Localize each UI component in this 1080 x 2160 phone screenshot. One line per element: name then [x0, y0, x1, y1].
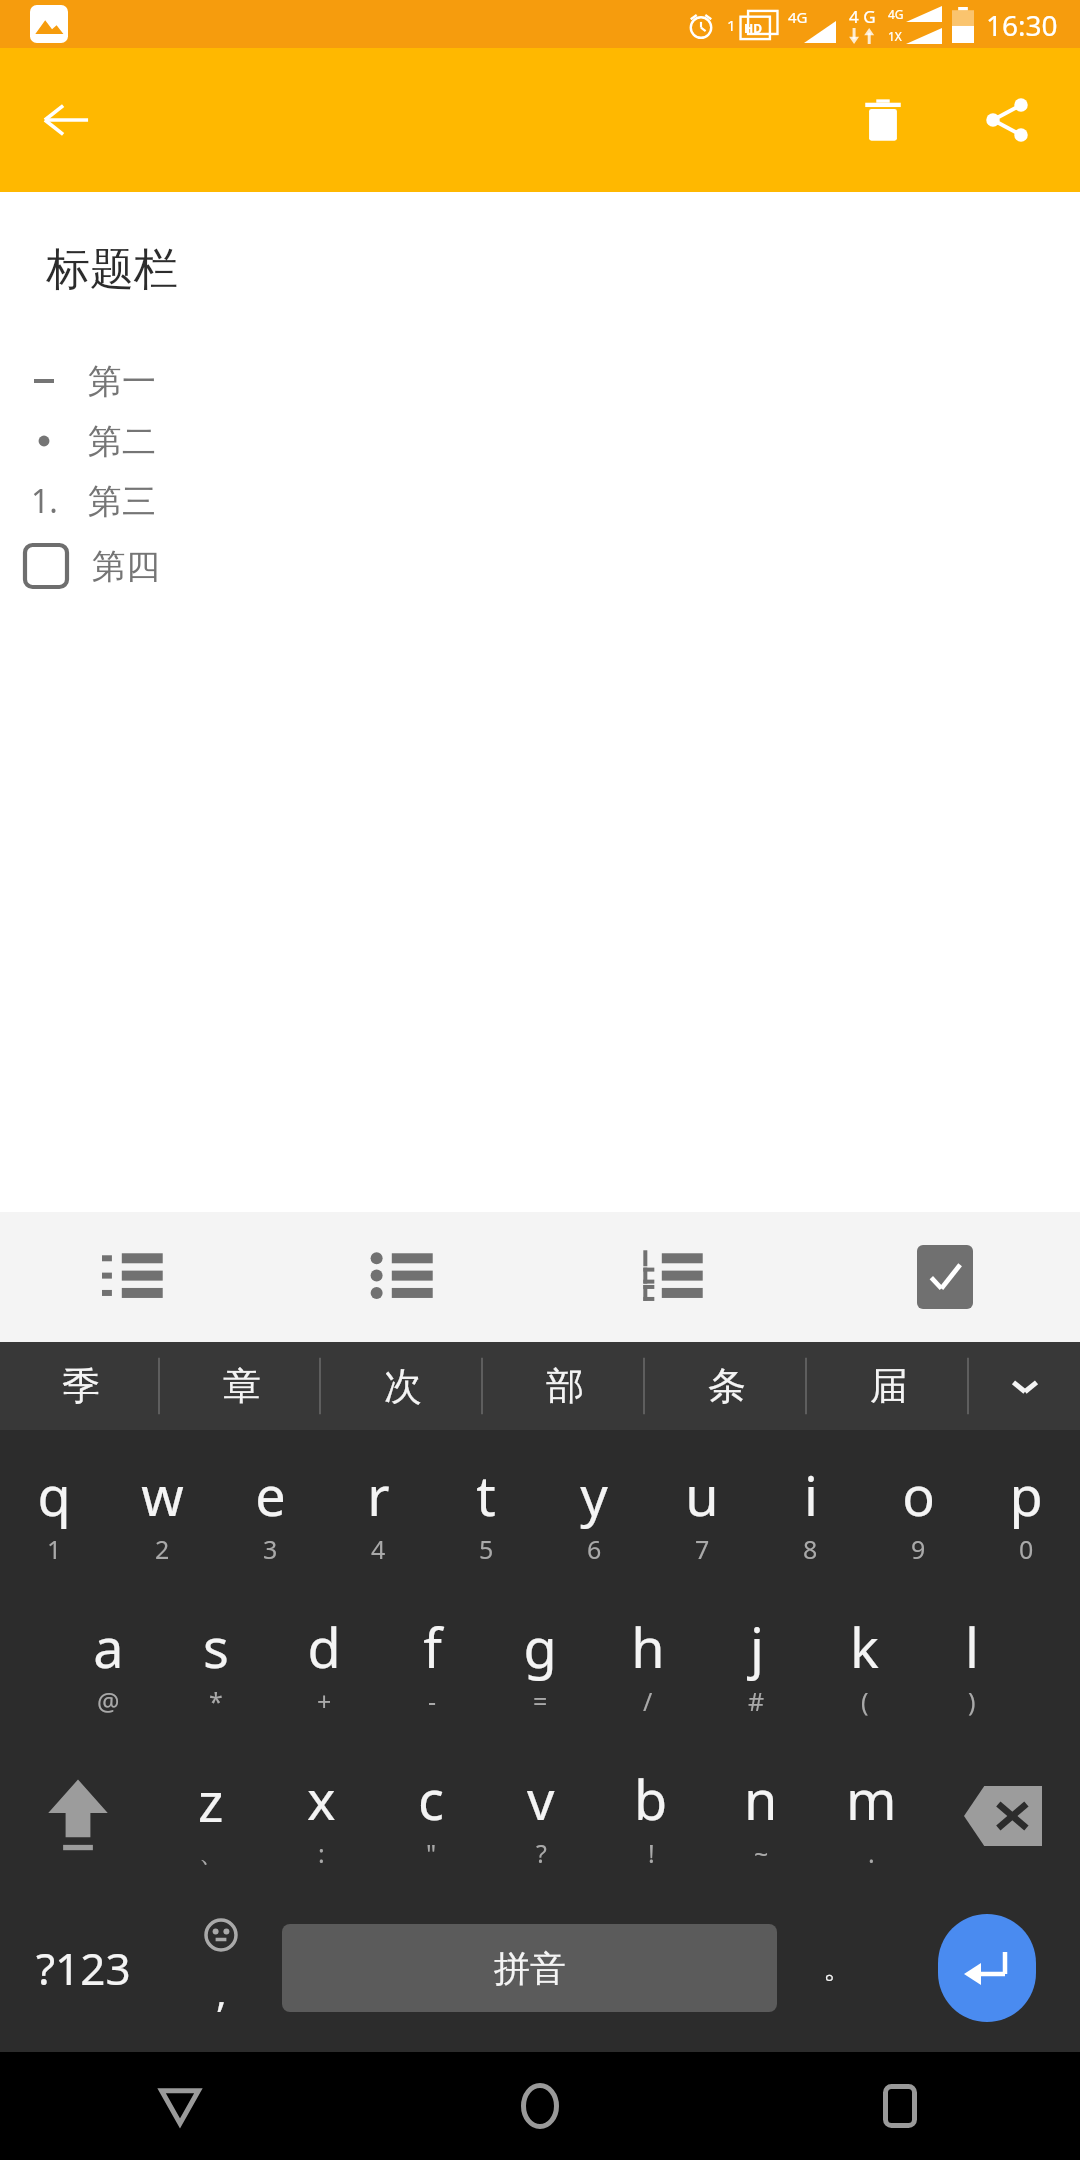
- staticText: 章: [223, 1362, 261, 1410]
- staticText: 4G: [888, 6, 904, 22]
- button[interactable]: 1.: [0, 471, 1080, 531]
- button[interactable]: 条: [646, 1342, 808, 1430]
- staticText: 。: [823, 1949, 853, 1987]
- staticText: 拼音: [494, 1946, 566, 1991]
- staticText: 7: [695, 1532, 710, 1566]
- staticText: ~: [754, 1836, 769, 1870]
- staticText: q: [37, 1458, 71, 1532]
- button[interactable]: Share: [958, 71, 1056, 169]
- staticText: (: [861, 1684, 869, 1718]
- button[interactable]: y: [540, 1436, 648, 1588]
- button[interactable]: 第四: [0, 531, 1080, 601]
- button[interactable]: l: [918, 1588, 1026, 1740]
- button[interactable]: 。: [783, 1892, 893, 2044]
- staticText: HD: [744, 20, 762, 36]
- button[interactable]: p: [972, 1436, 1080, 1588]
- staticText: 、: [199, 1838, 224, 1869]
- staticText: @: [97, 1684, 120, 1718]
- button[interactable]: w: [108, 1436, 216, 1588]
- button[interactable]: m: [816, 1740, 926, 1892]
- staticText: f: [423, 1610, 442, 1684]
- button[interactable]: s: [162, 1588, 270, 1740]
- staticText: w: [141, 1458, 184, 1532]
- staticText: *: [209, 1684, 223, 1718]
- button[interactable]: 季: [0, 1342, 161, 1430]
- button[interactable]: o: [864, 1436, 972, 1588]
- staticText: o: [902, 1458, 935, 1532]
- staticText: h: [631, 1610, 665, 1684]
- staticText: ?: [536, 1836, 547, 1870]
- button[interactable]: h: [594, 1588, 702, 1740]
- button[interactable]: ?123: [0, 1892, 166, 2044]
- staticText: 第四: [92, 545, 160, 588]
- staticText: -: [428, 1684, 437, 1718]
- button[interactable]: z: [155, 1740, 266, 1892]
- staticText: c: [418, 1762, 444, 1836]
- button[interactable]: More suggestions: [970, 1342, 1080, 1430]
- staticText: g: [523, 1610, 557, 1684]
- button[interactable]: Emoji and comma: [166, 1892, 276, 2044]
- staticText: 1: [727, 15, 736, 35]
- staticText: n: [744, 1762, 778, 1836]
- button[interactable]: Dash list: [0, 1212, 270, 1342]
- button[interactable]: 次: [322, 1342, 484, 1430]
- button[interactable]: g: [486, 1588, 594, 1740]
- button[interactable]: d: [270, 1588, 378, 1740]
- staticText: 16:30: [986, 6, 1058, 44]
- button[interactable]: Recent apps: [720, 2052, 1080, 2160]
- staticText: v: [527, 1762, 555, 1836]
- button[interactable]: i: [756, 1436, 864, 1588]
- button[interactable]: Back: [20, 74, 112, 166]
- button[interactable]: q: [0, 1436, 108, 1588]
- button[interactable]: n: [706, 1740, 816, 1892]
- button[interactable]: Delete: [834, 71, 932, 169]
- staticText: s: [203, 1610, 229, 1684]
- staticText: ,: [216, 1964, 227, 2018]
- staticText: i: [804, 1458, 818, 1532]
- button[interactable]: Home: [360, 2052, 720, 2160]
- button[interactable]: 部: [484, 1342, 646, 1430]
- staticText: 部: [546, 1362, 584, 1410]
- button[interactable]: a: [54, 1588, 162, 1740]
- button[interactable]: k: [810, 1588, 918, 1740]
- staticText: 1X: [888, 28, 902, 44]
- staticText: 1: [47, 1532, 62, 1566]
- staticText: x: [307, 1762, 336, 1836]
- staticText: ): [968, 1684, 976, 1718]
- button[interactable]: 届: [808, 1342, 970, 1430]
- staticText: ": [426, 1836, 437, 1870]
- button[interactable]: Bullet list: [270, 1212, 540, 1342]
- button[interactable]: Numbered list: [540, 1212, 810, 1342]
- button[interactable]: b: [596, 1740, 706, 1892]
- staticText: y: [580, 1458, 608, 1532]
- button[interactable]: x: [266, 1740, 376, 1892]
- button[interactable]: c: [376, 1740, 486, 1892]
- staticText: k: [850, 1610, 879, 1684]
- staticText: 季: [62, 1362, 100, 1410]
- staticText: z: [198, 1764, 224, 1838]
- button[interactable]: Back: [0, 2052, 360, 2160]
- staticText: !: [648, 1836, 655, 1870]
- button[interactable]: v: [486, 1740, 596, 1892]
- button[interactable]: Backspace: [926, 1740, 1080, 1892]
- button[interactable]: e: [216, 1436, 324, 1588]
- button[interactable]: Shift: [0, 1740, 155, 1892]
- staticText: 届: [870, 1362, 908, 1410]
- staticText: p: [1009, 1458, 1043, 1532]
- button[interactable]: 第一: [0, 351, 1080, 411]
- button[interactable]: 章: [161, 1342, 322, 1430]
- staticText: 4G: [788, 7, 808, 27]
- staticText: 2: [155, 1532, 170, 1566]
- button[interactable]: 拼音: [282, 1924, 777, 2012]
- button[interactable]: Enter: [938, 1914, 1036, 2022]
- button[interactable]: 第二: [0, 411, 1080, 471]
- button[interactable]: t: [432, 1436, 540, 1588]
- button[interactable]: j: [702, 1588, 810, 1740]
- button[interactable]: u: [648, 1436, 756, 1588]
- staticText: =: [533, 1684, 548, 1718]
- button[interactable]: Checklist: [810, 1212, 1080, 1342]
- staticText: r: [367, 1458, 390, 1532]
- staticText: #: [748, 1684, 765, 1718]
- button[interactable]: r: [324, 1436, 432, 1588]
- button[interactable]: f: [378, 1588, 486, 1740]
